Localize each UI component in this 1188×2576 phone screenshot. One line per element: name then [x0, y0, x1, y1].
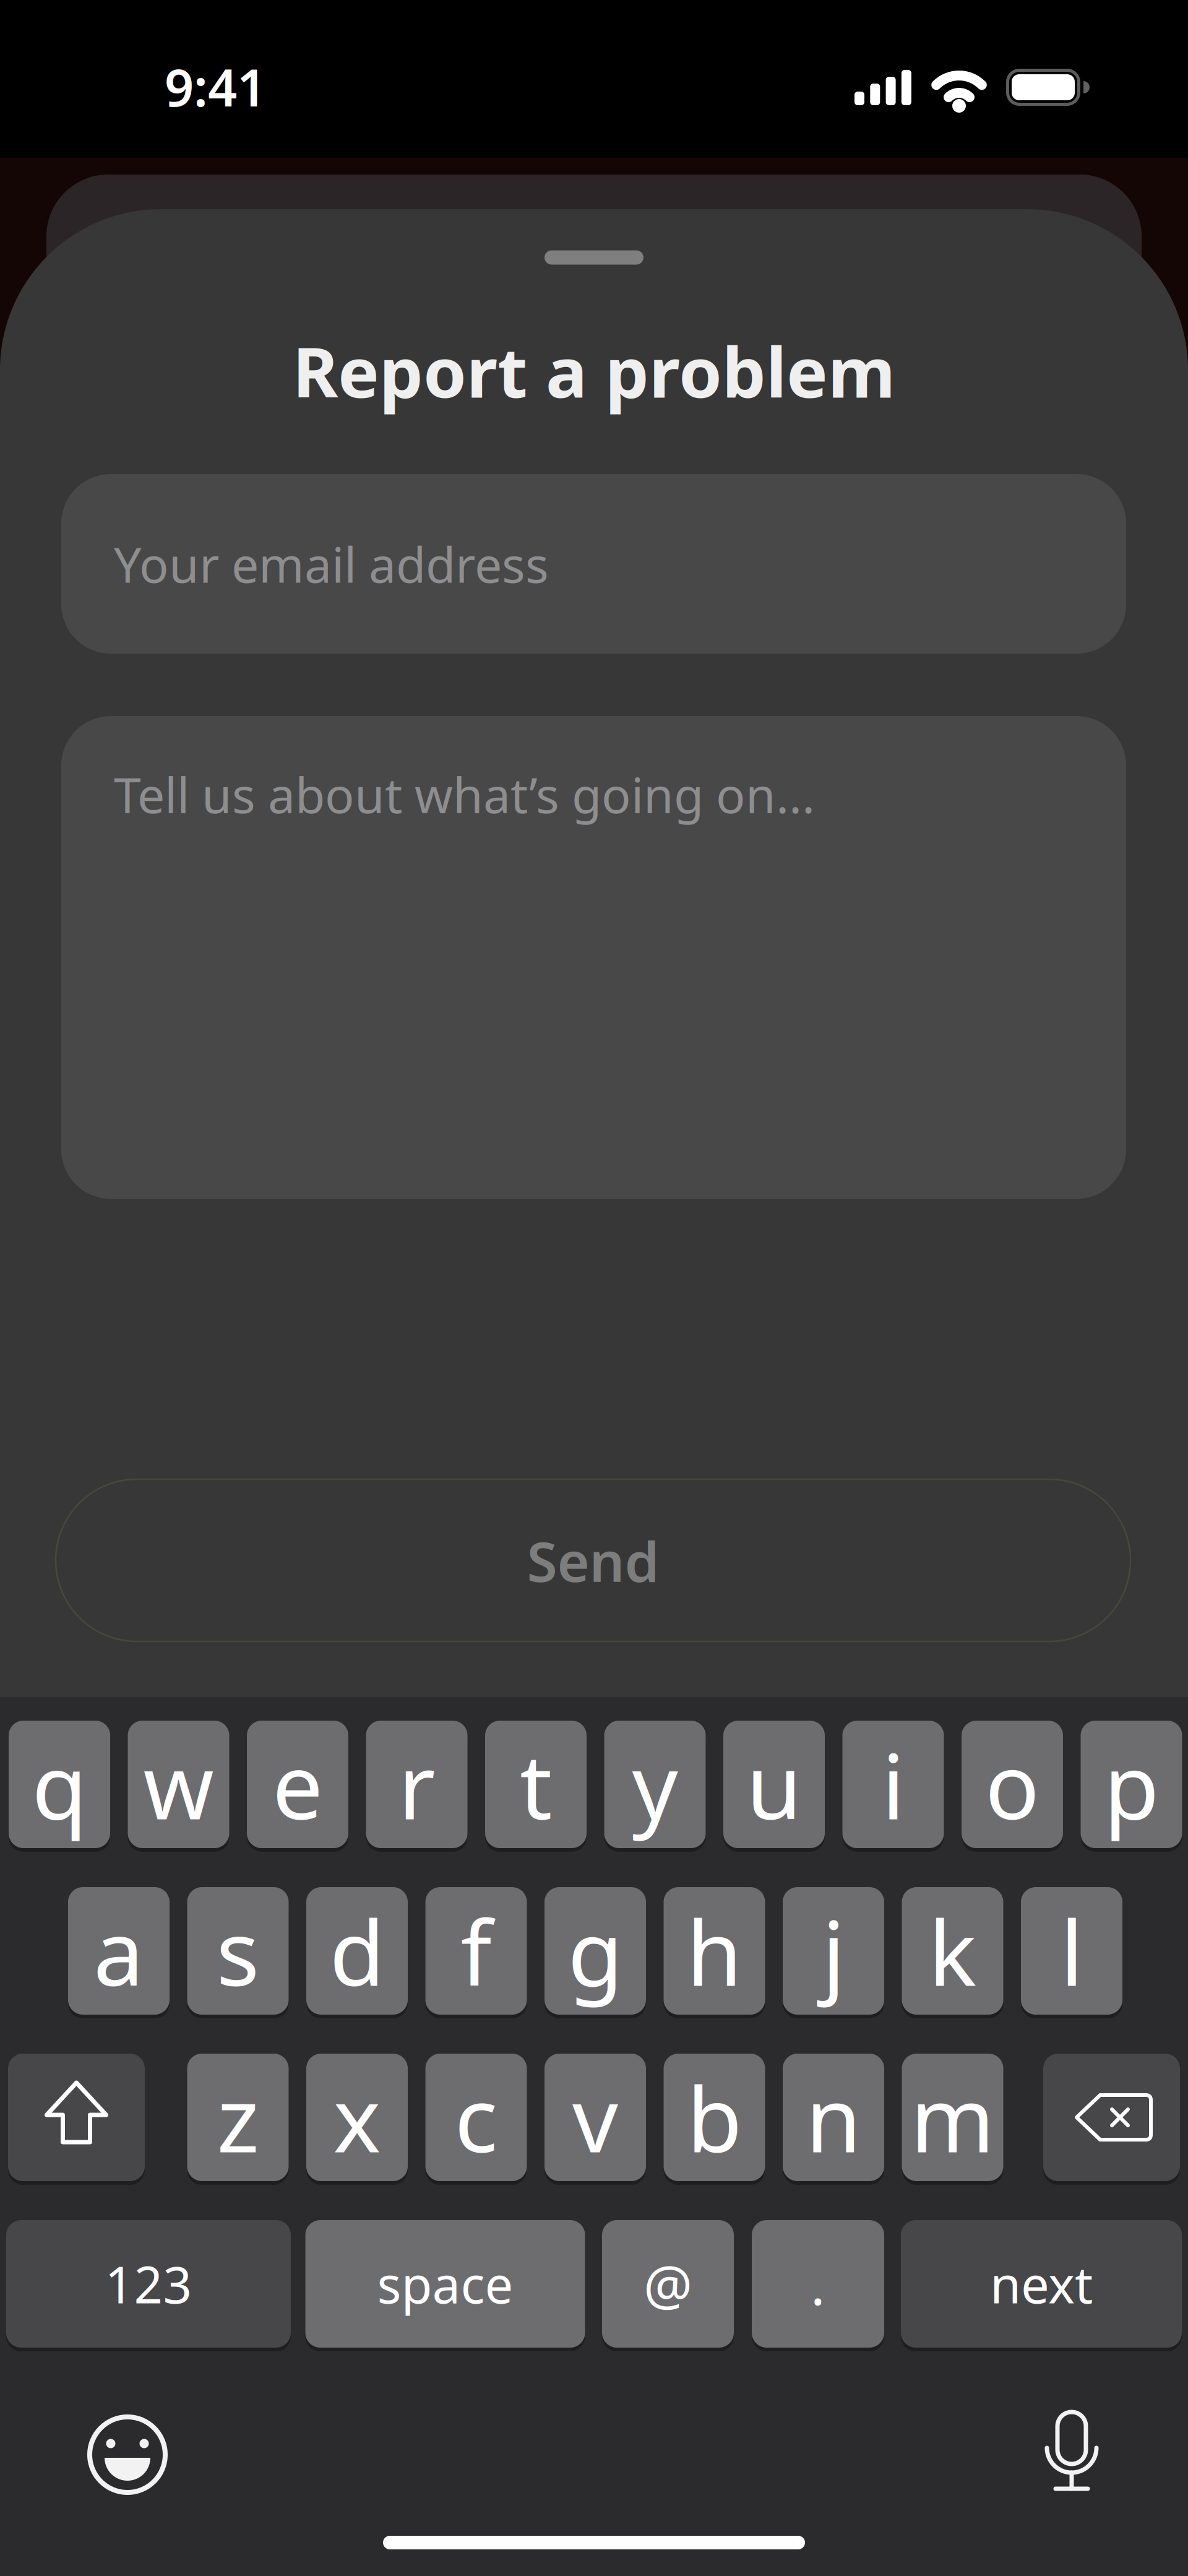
button[interactable]: . [752, 2220, 884, 2348]
staticText: d [329, 1891, 385, 2011]
staticText: u [746, 1725, 802, 1844]
staticText: r [398, 1725, 435, 1844]
button[interactable]: v [544, 2054, 646, 2181]
button[interactable]: next [901, 2220, 1182, 2348]
button[interactable]: r [366, 1721, 467, 1848]
button[interactable]: Shift [8, 2054, 145, 2181]
button[interactable]: u [723, 1721, 825, 1848]
staticText: x [333, 2058, 381, 2177]
button[interactable]: h [664, 1887, 765, 2015]
staticText: a [93, 1891, 144, 2011]
button[interactable]: space [305, 2220, 585, 2348]
button[interactable]: d [306, 1887, 408, 2015]
button[interactable]: o [962, 1721, 1063, 1848]
staticText: Tell us about what’s going on... [114, 762, 815, 827]
staticText: w [143, 1725, 214, 1844]
staticText: y [632, 1725, 678, 1844]
staticText: b [687, 2058, 742, 2177]
button[interactable]: Delete [1043, 2054, 1180, 2181]
staticText: t [520, 1725, 552, 1844]
button[interactable]: x [306, 2054, 408, 2181]
button[interactable]: f [425, 1887, 527, 2015]
staticText: l [1060, 1891, 1083, 2011]
staticText: o [985, 1725, 1039, 1844]
button[interactable]: c [425, 2054, 527, 2181]
staticText: p [1104, 1725, 1159, 1844]
staticText: v [572, 2058, 618, 2177]
button[interactable]: Emoji [87, 2414, 168, 2495]
staticText: q [32, 1725, 87, 1844]
button[interactable]: Tell us about what’s going on... [61, 716, 1126, 1199]
button[interactable]: l [1021, 1887, 1122, 2015]
staticText: Your email address [114, 532, 549, 596]
button[interactable]: q [9, 1721, 110, 1848]
staticText: m [910, 2058, 995, 2177]
button[interactable]: e [247, 1721, 348, 1848]
staticText: h [687, 1891, 742, 2011]
button[interactable]: g [544, 1887, 646, 2015]
staticText: Report a problem [293, 325, 895, 417]
staticText: 9:41 [165, 53, 266, 121]
staticText: n [806, 2058, 861, 2177]
button[interactable]: Dictation [1028, 2410, 1115, 2502]
button[interactable]: @ [602, 2220, 734, 2348]
button[interactable]: Your email address [61, 474, 1126, 654]
staticText: . [811, 2248, 825, 2320]
button[interactable]: a [68, 1887, 170, 2015]
staticText: i [882, 1725, 905, 1844]
staticText: k [928, 1891, 977, 2011]
button[interactable]: s [187, 1887, 289, 2015]
staticText: g [568, 1891, 623, 2011]
staticText: s [216, 1891, 260, 2011]
button[interactable]: t [485, 1721, 587, 1848]
button[interactable]: n [783, 2054, 884, 2181]
staticText: j [822, 1891, 845, 2011]
staticText: @ [643, 2248, 692, 2320]
button[interactable]: y [604, 1721, 706, 1848]
staticText: space [377, 2250, 513, 2317]
button[interactable]: p [1081, 1721, 1182, 1848]
button[interactable]: m [902, 2054, 1003, 2181]
button[interactable]: Send [56, 1479, 1130, 1641]
staticText: e [272, 1725, 323, 1844]
button[interactable]: z [187, 2054, 289, 2181]
staticText: f [461, 1891, 492, 2011]
staticText: next [990, 2250, 1093, 2317]
staticText: Send [527, 1524, 659, 1597]
button[interactable]: b [664, 2054, 765, 2181]
button[interactable]: i [842, 1721, 944, 1848]
staticText: z [217, 2058, 259, 2177]
staticText: 123 [105, 2250, 192, 2317]
button[interactable]: j [783, 1887, 884, 2015]
button[interactable]: 123 [6, 2220, 291, 2348]
button[interactable]: w [128, 1721, 229, 1848]
staticText: c [454, 2058, 498, 2177]
button[interactable]: k [902, 1887, 1003, 2015]
